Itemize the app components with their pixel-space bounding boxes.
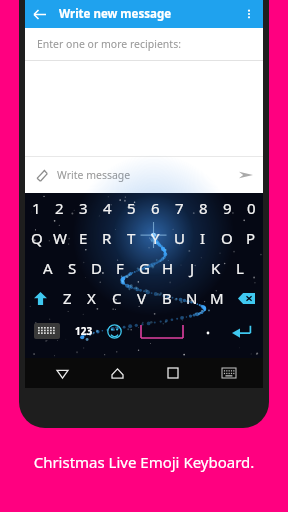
staticText: Y [151,228,160,248]
staticText: 6 [151,198,160,218]
button[interactable] [195,313,221,349]
button[interactable]: D [84,253,108,283]
staticText: Enter one or more recipients: [37,37,181,51]
button[interactable]: Enter one or more recipients: [25,28,263,60]
button[interactable]: Switch keyboard [25,313,69,349]
button[interactable]: N [179,283,204,313]
button[interactable]: L [228,253,252,283]
button[interactable]: Shift [25,283,55,313]
button[interactable]: Keyboard [201,358,257,388]
staticText: L [236,258,244,278]
button[interactable]: R [95,223,119,253]
staticText: C [112,288,122,308]
staticText: F [116,258,124,278]
button[interactable]: U [167,223,191,253]
button[interactable]: Z [55,283,79,313]
staticText: V [137,288,147,308]
staticText: 8 [199,198,208,218]
button[interactable] [129,313,195,349]
staticText: S [68,258,77,278]
button[interactable]: 6 [143,193,167,223]
staticText: 4 [103,198,112,218]
staticText: H [162,258,174,278]
staticText: 7 [175,198,184,218]
staticText: X [87,288,96,308]
button[interactable]: Enter [221,313,263,349]
staticText: Write message [57,168,229,182]
button[interactable]: V [129,283,154,313]
button[interactable]: Back [25,0,53,28]
button[interactable]: A [36,253,60,283]
staticText: G [139,258,150,278]
staticText: 3 [79,198,88,218]
button[interactable]: G [132,253,156,283]
button[interactable]: 5 [119,193,143,223]
staticText: J [190,258,195,278]
button[interactable]: 123 [69,313,99,349]
staticText: M [210,288,224,308]
button[interactable]: S [60,253,84,283]
staticText: I [200,228,206,248]
button[interactable]: Q [25,223,48,253]
staticText: Write new message [59,6,235,22]
staticText: Christmas Live Emoji Keyboard. [0,452,288,472]
button[interactable]: Emoji [99,313,129,349]
button[interactable]: C [104,283,129,313]
button[interactable]: Send [229,157,263,193]
button[interactable]: Y [143,223,167,253]
staticText: 9 [223,198,232,218]
staticText: N [186,288,198,308]
button[interactable]: P [239,223,263,253]
staticText: 123 [75,324,93,338]
button[interactable]: Recents [145,358,201,388]
button[interactable]: More options [235,0,263,28]
button[interactable]: 2 [48,193,71,223]
button[interactable]: 4 [95,193,119,223]
button[interactable]: Home [90,358,145,388]
button[interactable]: O [215,223,239,253]
staticText: 2 [55,198,64,218]
staticText: K [211,258,221,278]
button[interactable]: X [79,283,104,313]
staticText: A [43,258,53,278]
button[interactable]: F [108,253,132,283]
button[interactable]: B [154,283,179,313]
staticText: Q [31,228,43,248]
staticText: E [79,228,88,248]
staticText: T [127,228,136,248]
staticText: 0 [247,198,256,218]
staticText: W [53,228,67,248]
staticText: O [221,228,233,248]
staticText: Z [63,288,72,308]
staticText: 1 [32,198,41,218]
button[interactable]: Back [35,358,90,388]
staticText: R [102,228,112,248]
button[interactable]: 3 [71,193,95,223]
button[interactable]: 7 [167,193,191,223]
button[interactable]: E [71,223,95,253]
button[interactable]: T [119,223,143,253]
button[interactable]: I [191,223,215,253]
button[interactable]: 0 [239,193,263,223]
button[interactable]: 8 [191,193,215,223]
button[interactable]: K [204,253,228,283]
button[interactable]: 1 [25,193,48,223]
staticText: B [162,288,172,308]
button[interactable]: 9 [215,193,239,223]
button[interactable]: M [204,283,229,313]
staticText: 5 [127,198,136,218]
button[interactable]: H [156,253,180,283]
button[interactable]: Write message [25,157,263,193]
staticText: U [174,228,185,248]
button[interactable]: J [180,253,204,283]
staticText: D [91,258,102,278]
button[interactable]: Backspace [229,283,263,313]
button[interactable]: W [48,223,71,253]
staticText: P [246,228,256,248]
